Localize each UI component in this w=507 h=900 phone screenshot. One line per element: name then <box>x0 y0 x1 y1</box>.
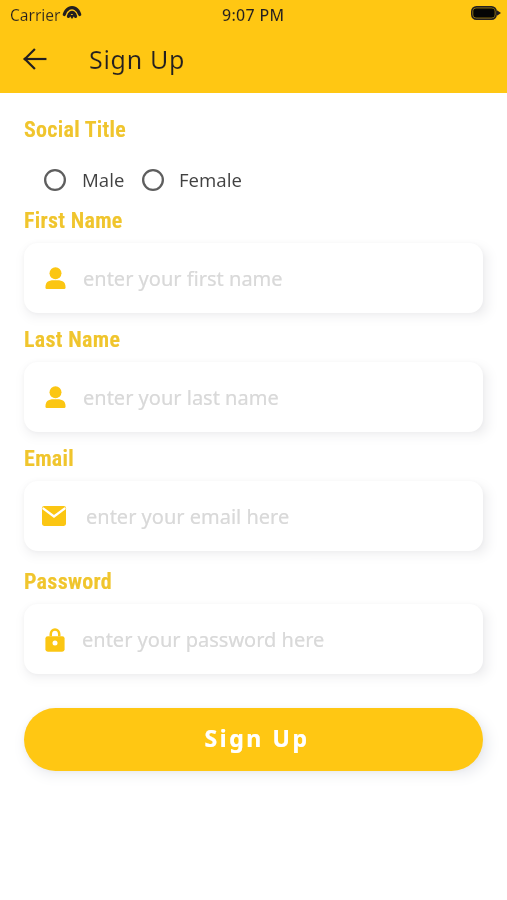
button[interactable]: enter your password here <box>24 604 483 674</box>
staticText: Sign Up <box>204 722 310 753</box>
button[interactable]: Sign Up <box>24 708 483 771</box>
other: Battery full <box>471 6 501 20</box>
button[interactable]: enter your email here <box>24 481 483 551</box>
staticText: Last Name <box>24 327 121 353</box>
button[interactable]: Male <box>44 167 125 192</box>
staticText: Female <box>179 167 242 192</box>
staticText: Male <box>82 167 125 192</box>
staticText: Password <box>24 569 112 595</box>
button[interactable]: Back <box>17 41 53 77</box>
staticText: Sign Up <box>89 42 186 76</box>
staticText: enter your last name <box>83 384 279 411</box>
staticText: enter your email here <box>86 503 290 530</box>
staticText: Social Title <box>24 117 127 143</box>
staticText: Carrier <box>10 4 61 25</box>
staticText: enter your first name <box>83 265 283 292</box>
button[interactable]: enter your last name <box>24 362 483 432</box>
staticText: 9:07 PM <box>222 4 285 26</box>
staticText: First Name <box>24 208 123 234</box>
button[interactable]: enter your first name <box>24 243 483 313</box>
button[interactable]: Female <box>142 167 242 192</box>
staticText: Email <box>24 446 74 472</box>
other: Wi-Fi signal <box>62 6 82 19</box>
staticText: enter your password here <box>82 626 325 653</box>
